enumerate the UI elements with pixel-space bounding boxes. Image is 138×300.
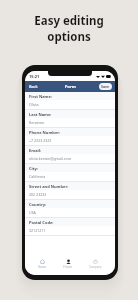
staticText: Email: bbox=[29, 148, 42, 153]
staticText: Phone Number: bbox=[29, 130, 61, 135]
staticText: Company bbox=[89, 265, 102, 269]
staticText: Home bbox=[38, 265, 46, 269]
button[interactable]: Save bbox=[99, 83, 112, 90]
staticText: First Name: bbox=[29, 94, 53, 99]
button[interactable]: City: bbox=[25, 164, 115, 182]
staticText: Kerwiton bbox=[29, 120, 45, 125]
button[interactable]: Back bbox=[25, 82, 41, 91]
button[interactable]: First Name: bbox=[25, 92, 115, 110]
staticText: Easy editing bbox=[34, 13, 104, 29]
staticText: Form bbox=[65, 84, 76, 90]
button[interactable]: Country: bbox=[25, 200, 115, 218]
staticText: 32121211 bbox=[29, 228, 46, 233]
staticText: Save bbox=[101, 84, 110, 89]
button[interactable]: Last Name: bbox=[25, 110, 115, 128]
button[interactable]: Phone Number: bbox=[25, 128, 115, 146]
staticText: Private bbox=[63, 265, 73, 269]
staticText: +7 2323 2323 bbox=[29, 138, 52, 143]
staticText: 202 23232 bbox=[29, 192, 47, 197]
button[interactable]: Company bbox=[86, 257, 105, 271]
staticText: Last Name: bbox=[29, 112, 52, 117]
staticText: USA bbox=[29, 210, 36, 215]
button[interactable]: Postal Code: bbox=[25, 218, 115, 236]
button[interactable]: Home bbox=[35, 257, 49, 271]
button[interactable]: Email: bbox=[25, 146, 115, 164]
staticText: Back bbox=[29, 84, 38, 89]
staticText: City: bbox=[29, 166, 38, 171]
staticText: Street and Number: bbox=[29, 184, 69, 189]
staticText: Postal Code: bbox=[29, 220, 54, 225]
staticText: Country: bbox=[29, 202, 47, 207]
staticText: options bbox=[47, 29, 91, 45]
staticText: 15:21 bbox=[29, 74, 40, 79]
staticText: Olivia bbox=[29, 102, 39, 107]
button[interactable]: Street and Number: bbox=[25, 182, 115, 200]
staticText: olivia.kerwin@gmail.com bbox=[29, 156, 72, 161]
button[interactable]: Private bbox=[60, 257, 76, 271]
staticText: California bbox=[29, 174, 46, 179]
